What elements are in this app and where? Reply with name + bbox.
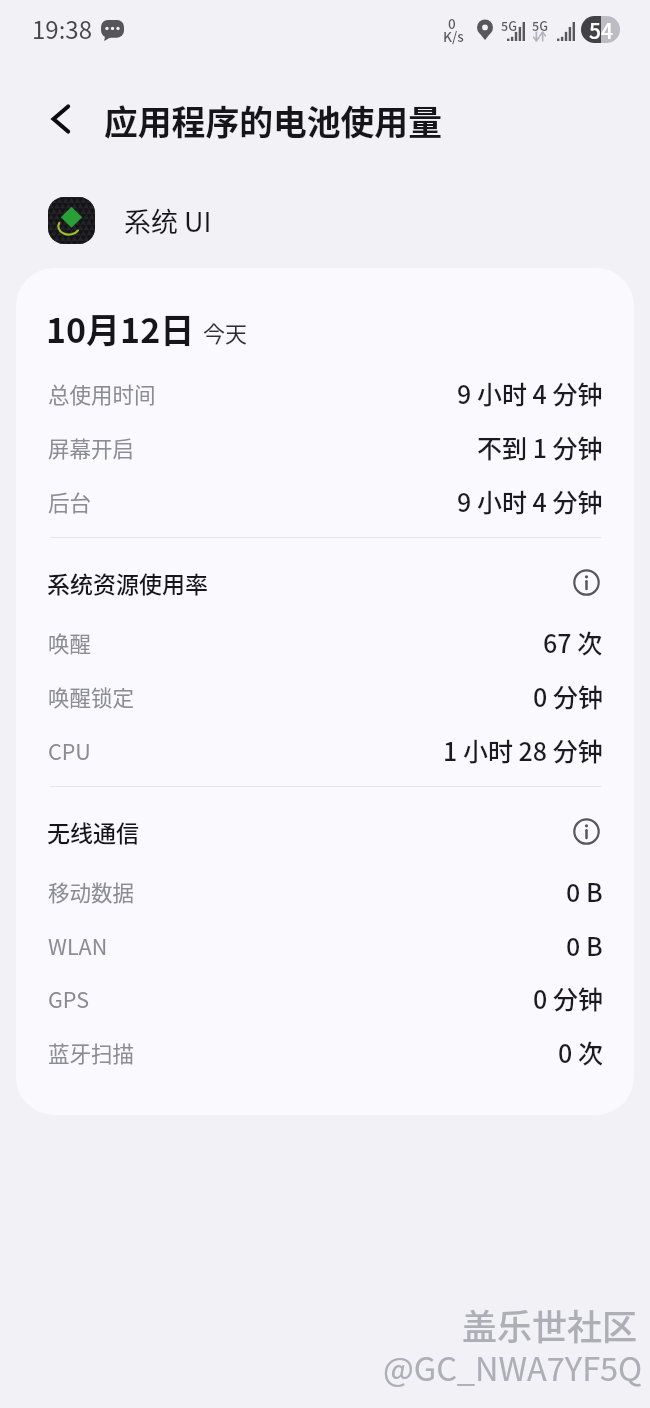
staticText: 19:38 [32, 11, 92, 46]
staticText: 0 B [566, 873, 603, 909]
staticText: 0 分钟 [533, 678, 603, 714]
staticText: 总使用时间 [48, 378, 156, 409]
button[interactable]: GPS [48, 971, 603, 1025]
button[interactable]: 移动数据 [48, 864, 603, 918]
staticText: 54 [589, 16, 613, 42]
staticText: @GC_NWA7YF5Q [383, 1343, 643, 1390]
staticText: 不到 1 分钟 [477, 429, 603, 465]
staticText: 系统 UI [124, 201, 212, 240]
staticText: 无线通信 [47, 815, 139, 848]
staticText: 10月12日 [46, 304, 195, 353]
staticText: 移动数据 [48, 876, 135, 907]
staticText: 5G [501, 16, 517, 34]
staticText: WLAN [48, 930, 108, 961]
button[interactable]: Info [568, 813, 604, 849]
staticText: 应用程序的电池使用量 [104, 96, 442, 145]
button[interactable]: 唤醒锁定 [48, 669, 603, 723]
staticText: 0 B [566, 927, 603, 963]
button[interactable]: CPU [48, 723, 603, 777]
button[interactable]: 蓝牙扫描 [48, 1025, 603, 1079]
staticText: 67 次 [543, 624, 603, 660]
button[interactable]: Back [34, 91, 90, 147]
staticText: 蓝牙扫描 [48, 1037, 135, 1068]
staticText: 唤醒 [48, 627, 92, 658]
button[interactable]: WLAN [48, 918, 603, 972]
staticText: CPU [48, 735, 91, 766]
staticText: 0 次 [558, 1034, 603, 1070]
staticText: 1 小时 28 分钟 [443, 732, 603, 768]
button[interactable]: 后台 [48, 474, 603, 528]
staticText: 系统资源使用率 [47, 566, 208, 599]
staticText: 9 小时 4 分钟 [457, 483, 603, 519]
button[interactable]: 屏幕开启 [48, 420, 603, 474]
button[interactable]: Info [568, 564, 604, 600]
staticText: 屏幕开启 [48, 432, 135, 463]
staticText: 盖乐世社区 [462, 1299, 638, 1350]
staticText: 5G [532, 16, 548, 34]
staticText: 今天 [203, 316, 248, 348]
staticText: 9 小时 4 分钟 [457, 375, 603, 411]
staticText: 后台 [48, 486, 92, 517]
staticText: 0 [448, 13, 456, 33]
staticText: K/s [443, 26, 464, 46]
staticText: 0 分钟 [533, 980, 603, 1016]
staticText: 唤醒锁定 [48, 681, 135, 712]
button[interactable]: 总使用时间 [48, 366, 603, 420]
button[interactable]: 唤醒 [48, 615, 603, 669]
button[interactable]: 无线通信 [47, 805, 604, 857]
staticText: GPS [48, 983, 90, 1014]
button[interactable]: 系统资源使用率 [47, 556, 604, 608]
